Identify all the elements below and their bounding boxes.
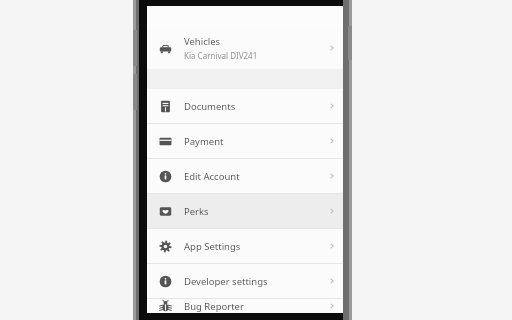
- other: Payment: [159, 135, 172, 148]
- staticText: Developer settings: [184, 275, 268, 288]
- staticText: Perks: [184, 205, 209, 218]
- button[interactable]: Account info: [147, 264, 343, 298]
- other: Bug reporter: [159, 300, 172, 313]
- button[interactable]: Documents: [147, 89, 343, 123]
- button[interactable]: Vehicles: [147, 27, 343, 69]
- staticText: Edit Account: [184, 170, 240, 183]
- button[interactable]: Perks: [147, 194, 343, 228]
- staticText: Bug Reporter: [184, 300, 244, 313]
- staticText: Documents: [184, 100, 236, 113]
- button[interactable]: Payment: [147, 124, 343, 158]
- other: Account info: [159, 170, 172, 183]
- staticText: Vehicles: [184, 35, 221, 48]
- other: Vehicles: [159, 42, 172, 55]
- other: Documents: [159, 100, 172, 113]
- button[interactable]: Bug reporter: [147, 299, 343, 313]
- other: Perks: [159, 205, 172, 218]
- button[interactable]: Account info: [147, 159, 343, 193]
- button[interactable]: Settings: [147, 229, 343, 263]
- staticText: Payment: [184, 135, 224, 148]
- other: Settings: [159, 240, 172, 253]
- other: Account info: [159, 275, 172, 288]
- staticText: App Settings: [184, 240, 241, 253]
- staticText: Kia Carnival DIV241: [184, 50, 258, 61]
